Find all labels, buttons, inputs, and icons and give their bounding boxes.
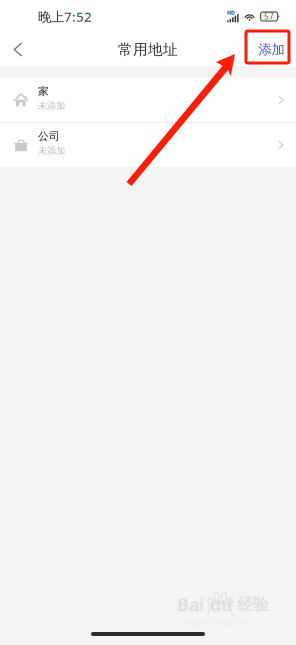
staticText: 晚上7:52 — [38, 8, 92, 25]
staticText: 未添加 — [38, 100, 65, 111]
staticText: 57 — [264, 11, 274, 22]
staticText: jingyan.baidu.com — [183, 616, 251, 627]
button[interactable]: 返回 — [0, 30, 36, 68]
button[interactable]: 添加 — [250, 33, 296, 65]
staticText: 经验 — [237, 595, 269, 614]
staticText: 添加 — [258, 41, 284, 58]
button[interactable]: 公司 — [0, 123, 296, 167]
staticText: 家 — [38, 85, 49, 98]
staticText: 常用地址 — [118, 40, 178, 58]
staticText: Bai — [177, 593, 204, 616]
staticText: du — [210, 593, 232, 616]
staticText: 公司 — [38, 130, 60, 143]
staticText: HD — [227, 9, 235, 16]
button[interactable]: 家 — [0, 78, 296, 122]
staticText: 未添加 — [38, 145, 65, 156]
